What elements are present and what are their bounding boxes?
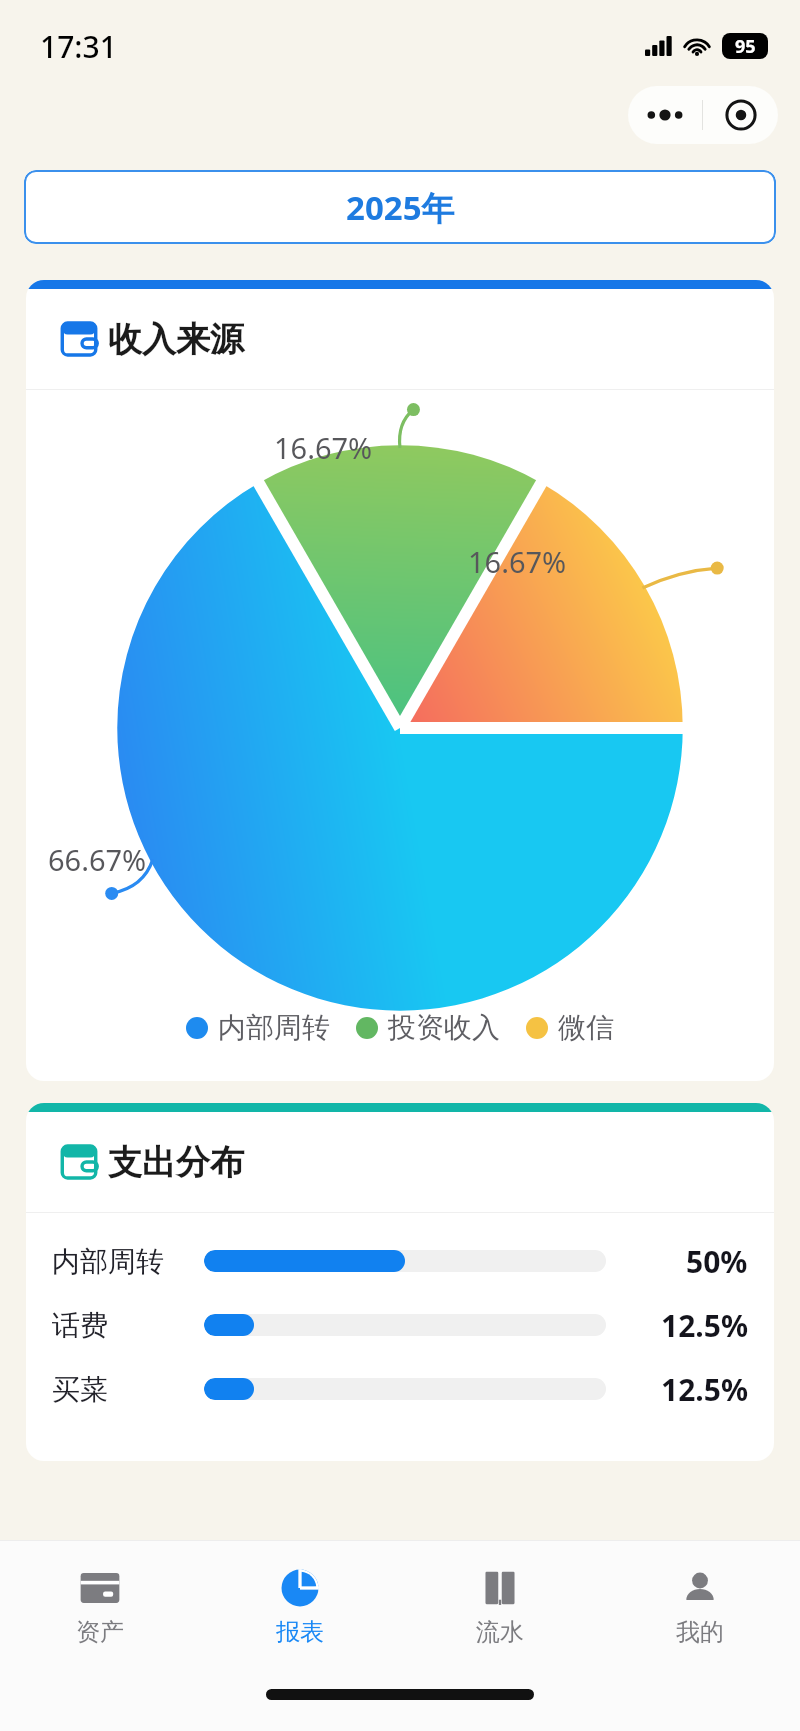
button[interactable]: 报表 bbox=[200, 1541, 400, 1671]
staticText: 50% bbox=[686, 1241, 748, 1282]
staticText: 我的 bbox=[676, 1617, 724, 1647]
staticText: 16.67% bbox=[468, 542, 567, 581]
button[interactable]: 微信 bbox=[526, 1010, 614, 1045]
button[interactable]: 2025年 bbox=[24, 170, 776, 244]
button[interactable]: 投资收入 bbox=[356, 1010, 500, 1045]
button[interactable]: 流水 bbox=[400, 1541, 600, 1671]
staticText: 17:31 bbox=[40, 26, 117, 67]
button[interactable]: Close mini program bbox=[703, 86, 778, 144]
staticText: 66.67% bbox=[48, 840, 147, 879]
staticText: 95 bbox=[735, 34, 756, 59]
button[interactable]: 话费 bbox=[26, 1293, 774, 1357]
staticText: 12.5% bbox=[661, 1369, 748, 1410]
button[interactable]: 资产 bbox=[0, 1541, 200, 1671]
button[interactable]: 买菜 bbox=[26, 1357, 774, 1421]
staticText: 话费 bbox=[52, 1308, 204, 1343]
button[interactable]: 内部周转 bbox=[26, 1229, 774, 1293]
staticText: 流水 bbox=[476, 1617, 524, 1647]
button[interactable]: 内部周转 bbox=[186, 1010, 330, 1045]
staticText: 微信 bbox=[558, 1010, 614, 1045]
button[interactable]: More options bbox=[628, 86, 702, 144]
staticText: 资产 bbox=[76, 1617, 124, 1647]
staticText: 内部周转 bbox=[218, 1010, 330, 1045]
button[interactable]: 我的 bbox=[600, 1541, 800, 1671]
staticText: 16.67% bbox=[274, 428, 373, 467]
staticText: 收入来源 bbox=[108, 318, 244, 361]
staticText: 买菜 bbox=[52, 1372, 204, 1407]
staticText: 12.5% bbox=[661, 1305, 748, 1346]
staticText: 2025年 bbox=[346, 185, 455, 230]
staticText: 内部周转 bbox=[52, 1244, 204, 1279]
staticText: 投资收入 bbox=[388, 1010, 500, 1045]
staticText: 支出分布 bbox=[108, 1141, 244, 1184]
staticText: 报表 bbox=[276, 1617, 324, 1647]
